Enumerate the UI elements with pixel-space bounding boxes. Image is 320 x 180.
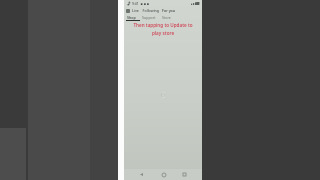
- staticText: Then tapping to Update to: [127, 22, 199, 28]
- staticText: 9:41 ▪ ▪ ▪: [132, 1, 150, 6]
- staticText: play store: [127, 30, 199, 36]
- staticText: Shop: [127, 15, 136, 20]
- button[interactable]: Home: [159, 170, 168, 179]
- staticText: For you: [162, 8, 176, 13]
- staticText: Store: [162, 15, 171, 20]
- button[interactable]: Recent apps: [180, 170, 189, 179]
- button[interactable]: Menu: [126, 9, 130, 13]
- staticText: Support: [142, 15, 156, 20]
- button[interactable]: Store: [161, 15, 172, 20]
- button[interactable]: Support: [141, 15, 157, 20]
- staticText: Live Following: [132, 8, 160, 13]
- button[interactable]: Back: [137, 170, 146, 179]
- button[interactable]: Shop: [126, 15, 137, 20]
